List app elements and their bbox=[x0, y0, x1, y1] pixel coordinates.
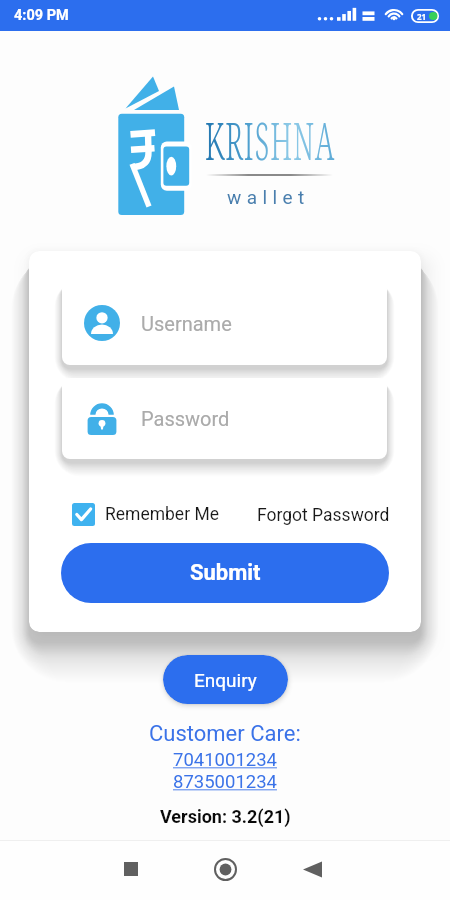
button[interactable]: Remember Me bbox=[72, 503, 219, 526]
staticText: Submit bbox=[190, 560, 261, 586]
staticText: Enquiry bbox=[194, 669, 257, 691]
staticText: Username bbox=[141, 312, 232, 335]
button[interactable]: Back bbox=[284, 841, 340, 897]
button[interactable]: Recent apps bbox=[103, 841, 159, 897]
staticText: 4:09 PM bbox=[14, 7, 69, 24]
button[interactable]: 7041001234 bbox=[173, 749, 277, 771]
staticText: Version: 3.2(21) bbox=[160, 806, 291, 827]
staticText: wallet bbox=[227, 186, 310, 208]
button[interactable]: Forgot Password bbox=[257, 502, 390, 529]
button[interactable]: 8735001234 bbox=[173, 771, 277, 793]
button[interactable]: Password bbox=[62, 378, 387, 459]
staticText: Password bbox=[141, 407, 230, 430]
staticText: 21 bbox=[417, 11, 427, 22]
button[interactable]: Enquiry bbox=[163, 655, 288, 704]
staticText: KRISHNA bbox=[205, 106, 335, 174]
button[interactable]: Submit bbox=[61, 543, 389, 603]
button[interactable]: Home bbox=[197, 841, 253, 897]
staticText: Customer Care: bbox=[149, 721, 301, 747]
button[interactable]: Username bbox=[62, 281, 387, 365]
staticText: Remember Me bbox=[105, 504, 219, 525]
